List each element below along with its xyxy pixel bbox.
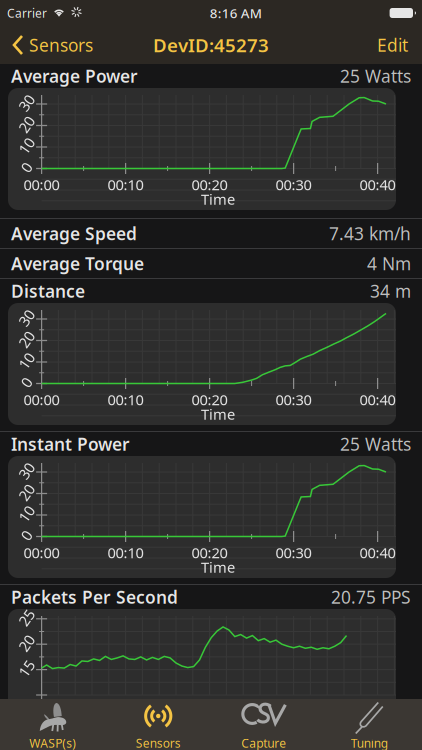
staticText: Carrier [7, 5, 47, 21]
staticText: 00:20 [192, 543, 228, 562]
button[interactable]: WASP(s) [0, 699, 105, 750]
staticText: Sensors [136, 735, 181, 750]
staticText: 25 Watts [340, 64, 411, 87]
staticText: 10 [18, 504, 34, 524]
staticText: 0 [22, 158, 30, 177]
staticText: 4 Nm [367, 252, 411, 275]
staticText: 00:30 [276, 543, 312, 562]
staticText: 0 [22, 526, 30, 545]
button[interactable]: Sensors [105, 699, 211, 750]
staticText: Edit [377, 33, 408, 56]
staticText: 30 [18, 93, 34, 113]
staticText: 20 [18, 115, 34, 134]
staticText: 00:00 [24, 390, 60, 409]
staticText: 25 [18, 608, 34, 628]
staticText: 00:40 [360, 175, 396, 194]
staticText: 00:40 [360, 390, 396, 409]
staticText: Distance [11, 279, 85, 302]
staticText: Instant Power [11, 432, 130, 455]
staticText: 30 [18, 308, 34, 328]
staticText: Capture [241, 735, 286, 750]
staticText: 00:10 [108, 390, 144, 409]
button[interactable]: Sensors [0, 26, 93, 64]
staticText: Average Speed [11, 222, 137, 245]
button[interactable]: Average Torque [0, 249, 422, 279]
staticText: Tuning [351, 735, 388, 750]
staticText: 30 [18, 461, 34, 481]
staticText: 15 [18, 659, 34, 678]
staticText: 8:16 AM [210, 4, 262, 22]
staticText: 20 [18, 633, 34, 653]
staticText: WASP(s) [29, 735, 76, 750]
staticText: Average Power [11, 64, 138, 87]
staticText: Average Torque [11, 252, 144, 275]
button[interactable]: Average Speed [0, 219, 422, 249]
staticText: 25 Watts [340, 432, 411, 455]
staticText: 00:10 [108, 543, 144, 562]
staticText: 10 [18, 136, 34, 156]
staticText: 00:00 [24, 543, 60, 562]
staticText: DevID:45273 [153, 33, 269, 57]
staticText: Sensors [29, 33, 93, 56]
button[interactable]: Tuning [316, 699, 422, 750]
staticText: 20 [18, 483, 34, 502]
staticText: 20.75 PPS [331, 585, 411, 608]
staticText: 00:20 [192, 390, 228, 409]
button[interactable]: Capture [211, 699, 316, 750]
staticText: 7.43 km/h [329, 222, 411, 245]
staticText: Packets Per Second [11, 585, 178, 608]
staticText: Time [201, 189, 235, 209]
staticText: 00:40 [360, 543, 396, 562]
staticText: 00:30 [276, 175, 312, 194]
staticText: 20 [18, 330, 34, 349]
staticText: Time [201, 404, 235, 424]
staticText: 34 m [370, 279, 411, 302]
staticText: 00:00 [24, 175, 60, 194]
staticText: 0 [22, 373, 30, 392]
staticText: 10 [18, 351, 34, 371]
staticText: Time [201, 557, 235, 577]
button[interactable]: Edit [377, 26, 422, 64]
staticText: 00:30 [276, 390, 312, 409]
staticText: 00:20 [192, 175, 228, 194]
staticText: 00:10 [108, 175, 144, 194]
